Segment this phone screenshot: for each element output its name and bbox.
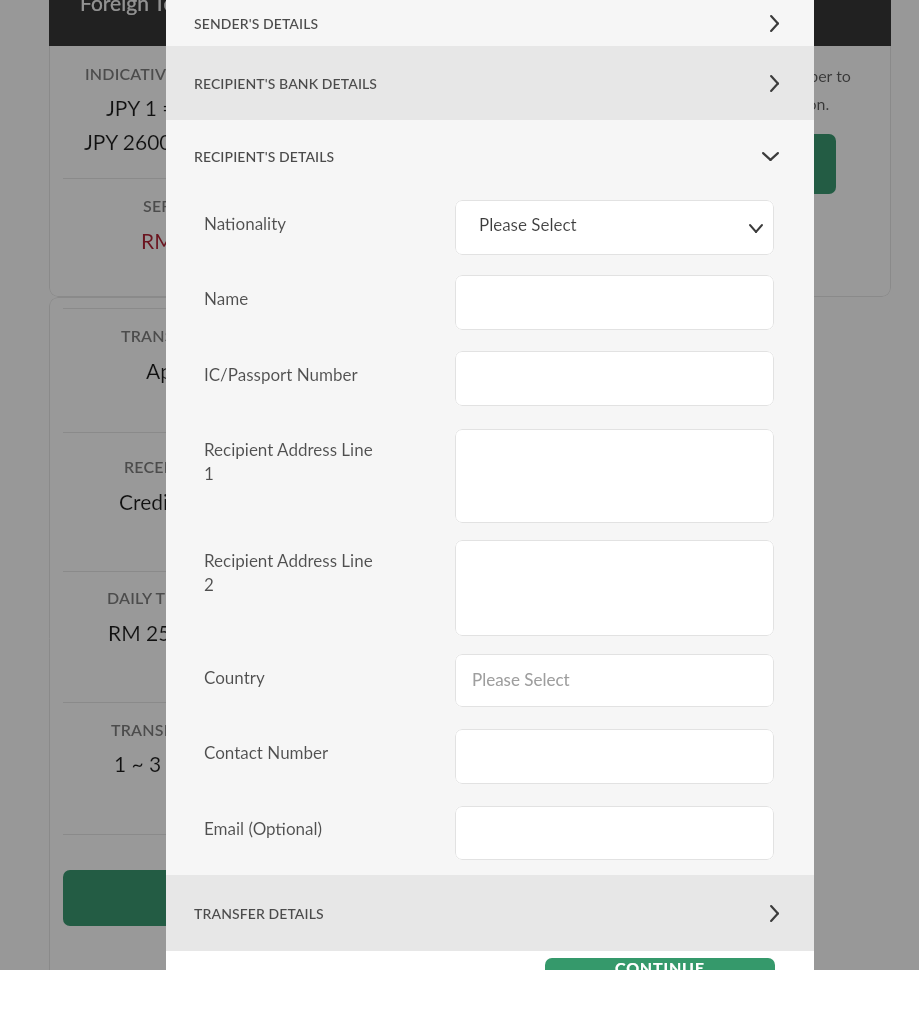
button[interactable]: SENDER'S DETAILS [166, 0, 814, 46]
other: Open Nationality list [749, 224, 763, 233]
other: Expand RECIPIENT'S BANK DETAILS [770, 75, 779, 92]
staticText: Please Select [472, 669, 570, 689]
staticText: INDICATIVE EXCHANGE RATE [85, 64, 312, 83]
staticText: JPY 26000.00 = RM 990.60 [84, 129, 340, 154]
other: Expand SENDER'S DETAILS [770, 15, 779, 32]
button[interactable] [455, 540, 774, 636]
staticText: TRANSFER DETAILS [194, 905, 770, 922]
button[interactable]: Please Select [455, 200, 774, 255]
button[interactable]: CONTINUE [545, 958, 775, 970]
staticText: TRANSFER DURATION [111, 720, 282, 739]
staticText: RECIPIENT'S BANK DETAILS [194, 75, 770, 92]
staticText: DAILY TRANSFER LIMIT [107, 588, 285, 607]
staticText: Name [204, 288, 376, 308]
staticText: Email (Optional) [204, 818, 376, 838]
staticText: SENDER'S DETAILS [194, 15, 770, 32]
button[interactable]: RECIPIENT'S BANK DETAILS [166, 46, 814, 120]
staticText: 1 ~ 3 Working Days [114, 751, 296, 776]
staticText: Please Select [479, 214, 577, 234]
staticText: Credit to Account [119, 489, 282, 514]
button[interactable]: RECIPIENT'S DETAILS [166, 120, 814, 193]
staticText: RECIPIENT'S DETAILS [194, 148, 762, 165]
button[interactable] [455, 429, 774, 523]
other: Collapse RECIPIENT'S DETAILS [762, 152, 779, 161]
staticText: RM 25000.00 [108, 620, 237, 645]
button[interactable] [455, 729, 774, 784]
button[interactable] [455, 351, 774, 406]
button[interactable]: Please Select [455, 654, 774, 707]
staticText: Apply Online [146, 358, 266, 383]
staticText: JPY 1 = RM 0.038100 [106, 95, 309, 120]
staticText: CONTINUE [615, 958, 705, 970]
button[interactable]: SUBMIT [560, 134, 836, 194]
button[interactable]: TRANSFER NOW [63, 870, 686, 926]
button[interactable]: TRANSFER DETAILS [166, 875, 814, 951]
staticText: Foreign Telegraphic Transfer [80, 0, 338, 15]
other: Expand TRANSFER DETAILS [770, 905, 779, 922]
staticText: Contact Number [204, 742, 376, 762]
staticText: Nationality [204, 213, 376, 233]
staticText: RECEIVING METHOD [124, 457, 286, 476]
button[interactable] [455, 275, 774, 330]
staticText: SERVICE CHARGE [143, 196, 278, 215]
staticText: Please ensure that you key in a valid co… [466, 66, 858, 113]
staticText: Country [204, 667, 376, 687]
staticText: RM 10.00 [141, 228, 233, 253]
staticText: Recipient Address Line 2 [204, 550, 376, 594]
staticText: TRANSACTION TYPE [121, 326, 279, 345]
button[interactable] [455, 806, 774, 860]
staticText: IC/Passport Number [204, 364, 376, 384]
staticText: Recipient Address Line 1 [204, 439, 376, 483]
